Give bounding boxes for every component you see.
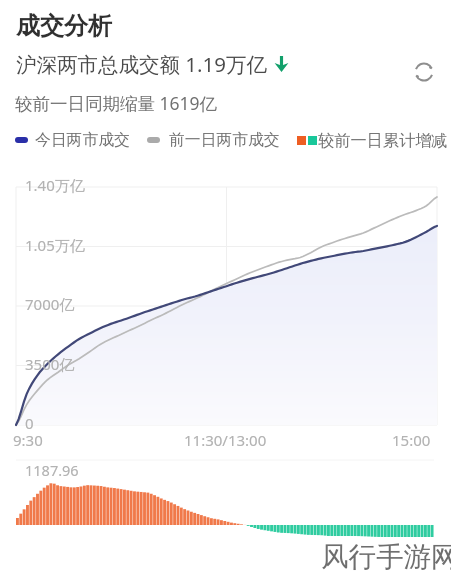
staticText: 风行手游网 (321, 540, 451, 575)
staticText: 前一日两市成交 (169, 130, 280, 150)
staticText: 成交分析 (16, 11, 112, 41)
staticText: 较前一日同期缩量 1619亿 (15, 91, 218, 115)
staticText: 较前一日累计增减 (318, 130, 448, 150)
staticText: 11:30/13:00 (184, 430, 267, 450)
staticText: 今日两市成交 (35, 130, 130, 150)
staticText: 9:30 (13, 430, 43, 450)
staticText: 1187.96 (25, 460, 79, 480)
staticText: 0 (25, 413, 34, 433)
button[interactable]: Refresh (410, 58, 438, 86)
staticText: 7000亿 (25, 294, 75, 314)
staticText: 3500亿 (25, 354, 75, 374)
staticText: 1.40万亿 (25, 175, 85, 195)
staticText: 1.05万亿 (25, 235, 85, 255)
staticText: 沪深两市总成交额 1.19万亿 (16, 50, 268, 78)
staticText: 15:00 (392, 430, 431, 450)
